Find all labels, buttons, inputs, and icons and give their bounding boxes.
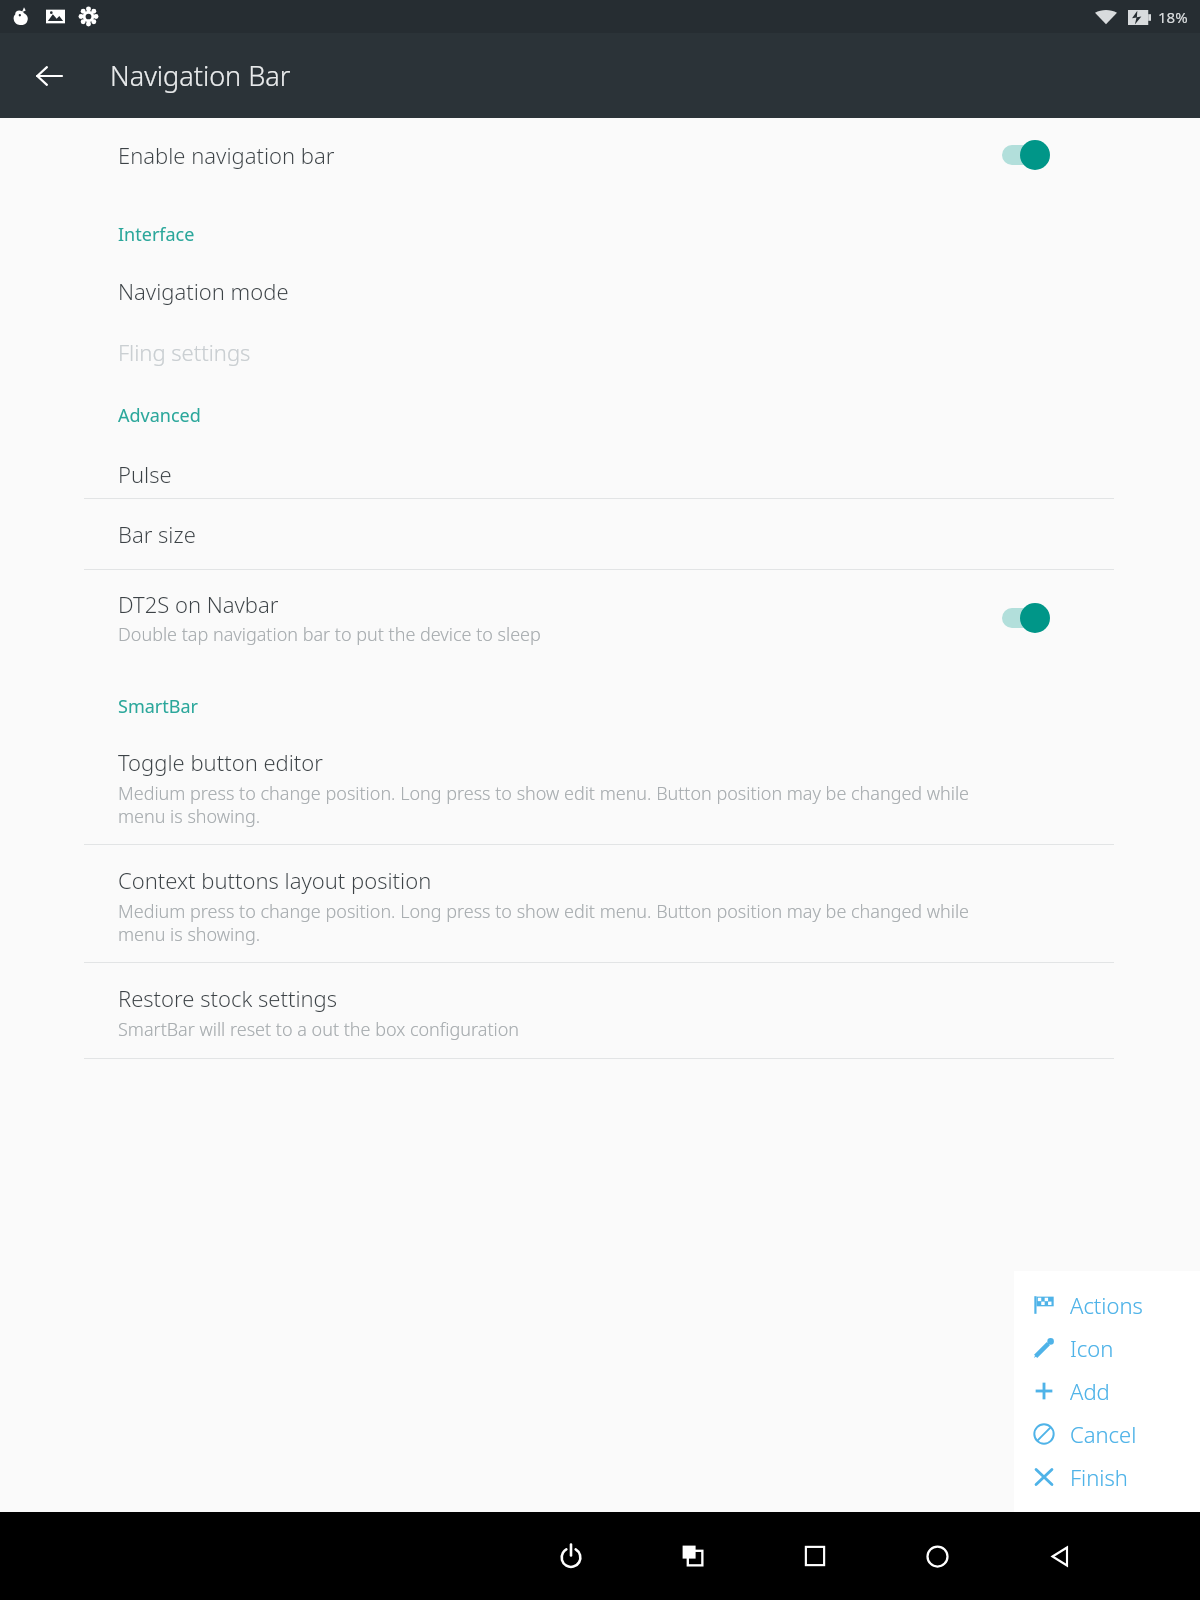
button[interactable]: Bar size — [0, 499, 1200, 569]
staticText: Icon — [1070, 1333, 1114, 1363]
staticText: Restore stock settings — [118, 983, 338, 1013]
button[interactable]: Home — [906, 1525, 968, 1587]
button[interactable]: Back — [1028, 1525, 1090, 1587]
staticText: Navigation Bar — [110, 57, 291, 94]
button[interactable]: Toggle button editor — [0, 733, 1200, 844]
button[interactable]: Add — [1014, 1369, 1200, 1412]
staticText: Advanced — [118, 403, 201, 428]
button[interactable]: Overview — [784, 1525, 846, 1587]
staticText: Bar size — [118, 519, 196, 549]
staticText: 18% — [1158, 7, 1188, 27]
button[interactable]: Enable navigation bar — [0, 124, 1200, 186]
staticText: Context buttons layout position — [118, 865, 432, 895]
staticText: SmartBar will reset to a out the box con… — [118, 1017, 520, 1042]
button[interactable]: Navigation mode — [0, 271, 1200, 311]
staticText: Interface — [118, 222, 195, 247]
staticText: Fling settings — [118, 337, 251, 367]
button[interactable]: Recents — [662, 1525, 724, 1587]
button[interactable]: Finish — [1014, 1455, 1200, 1498]
staticText: Finish — [1070, 1462, 1128, 1492]
button[interactable]: Actions — [1014, 1283, 1200, 1326]
staticText: Double tap navigation bar to put the dev… — [118, 622, 541, 647]
staticText: Pulse — [118, 459, 172, 489]
button[interactable]: DT2S on Navbar — [0, 570, 1200, 666]
staticText: SmartBar — [118, 694, 198, 719]
staticText: DT2S on Navbar — [118, 589, 279, 619]
staticText: Cancel — [1070, 1419, 1137, 1449]
button[interactable]: Back — [26, 53, 72, 99]
button[interactable]: Icon — [1014, 1326, 1200, 1369]
staticText: Actions — [1070, 1290, 1143, 1320]
staticText: Navigation mode — [118, 276, 289, 306]
staticText: Enable navigation bar — [118, 140, 335, 170]
button[interactable]: Pulse — [0, 450, 1200, 498]
button[interactable]: Power — [540, 1525, 602, 1587]
button[interactable]: Cancel — [1014, 1412, 1200, 1455]
staticText: Medium press to change position. Long pr… — [118, 899, 970, 946]
staticText: Toggle button editor — [118, 747, 323, 777]
button[interactable]: Context buttons layout position — [0, 851, 1200, 962]
staticText: Medium press to change position. Long pr… — [118, 781, 970, 828]
staticText: Add — [1070, 1376, 1110, 1406]
button[interactable]: Restore stock settings — [0, 969, 1200, 1058]
